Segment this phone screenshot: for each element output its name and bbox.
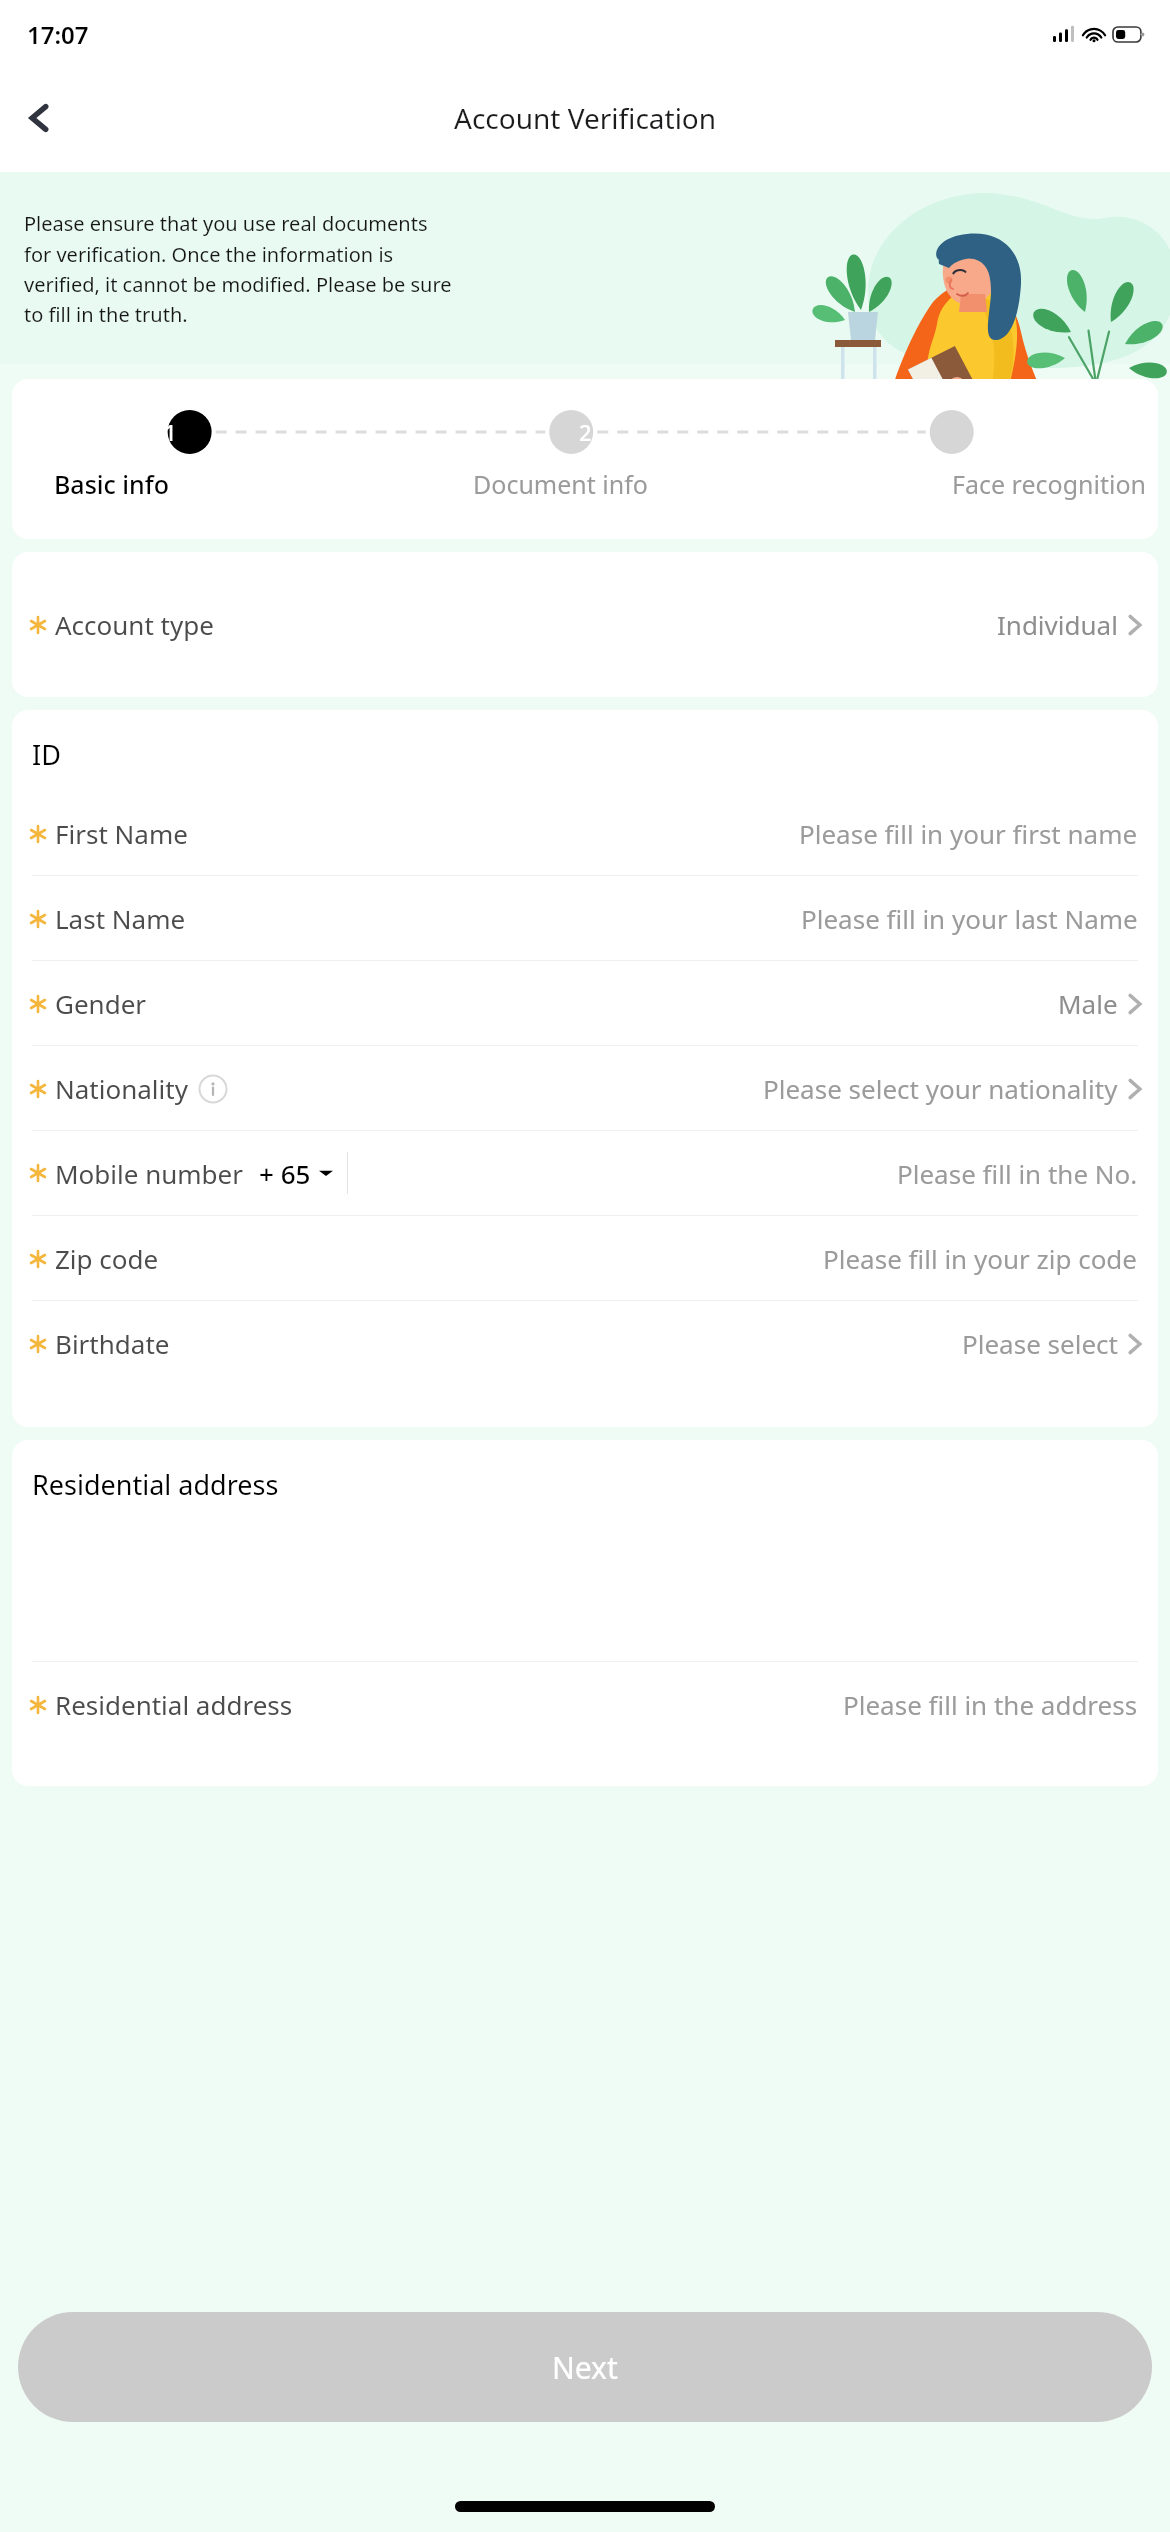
staticText: Next bbox=[552, 2347, 618, 2388]
staticText: Please fill in your first name bbox=[799, 816, 1138, 851]
staticText: Please fill in the No. bbox=[897, 1156, 1138, 1191]
button[interactable]: Basic info bbox=[54, 467, 169, 501]
staticText: Please select your nationality bbox=[763, 1071, 1118, 1106]
staticText: Please select bbox=[962, 1326, 1118, 1361]
staticText: First Name bbox=[55, 816, 188, 851]
staticText: Last Name bbox=[55, 901, 186, 936]
staticText: Document info bbox=[473, 467, 648, 501]
staticText: Residential address bbox=[55, 1687, 293, 1722]
button[interactable]: Birthdate bbox=[12, 1301, 1158, 1385]
staticText: Please fill in your last Name bbox=[801, 901, 1138, 936]
staticText: Basic info bbox=[54, 467, 169, 501]
button[interactable]: Document info bbox=[473, 467, 648, 501]
staticText: 17:07 bbox=[27, 18, 89, 51]
button[interactable]: Next bbox=[18, 2312, 1152, 2422]
staticText: Please fill in the address bbox=[843, 1687, 1138, 1722]
button[interactable]: Residential address bbox=[12, 1662, 1158, 1746]
button[interactable]: First Name bbox=[12, 791, 1158, 875]
staticText: Please fill in your zip code bbox=[823, 1241, 1138, 1276]
staticText: Face recognition bbox=[952, 467, 1146, 501]
staticText: Male bbox=[1058, 986, 1118, 1021]
staticText: Gender bbox=[55, 986, 147, 1021]
button[interactable]: Mobile number bbox=[12, 1131, 1158, 1215]
staticText: Zip code bbox=[55, 1241, 159, 1276]
staticText: Account Verification bbox=[454, 99, 717, 137]
staticText: Please ensure that you use real document… bbox=[24, 210, 454, 327]
staticText: Nationality bbox=[55, 1071, 188, 1106]
button[interactable]: Nationality information bbox=[198, 1074, 228, 1104]
button[interactable]: Last Name bbox=[12, 876, 1158, 960]
staticText: Mobile number bbox=[55, 1156, 243, 1191]
staticText: Birthdate bbox=[55, 1326, 170, 1361]
button[interactable]: Back bbox=[12, 90, 68, 146]
button[interactable]: Zip code bbox=[12, 1216, 1158, 1300]
staticText: Account type bbox=[55, 607, 214, 642]
staticText: Individual bbox=[997, 607, 1118, 642]
button[interactable]: Nationality bbox=[12, 1046, 1158, 1130]
button[interactable]: Gender bbox=[12, 961, 1158, 1045]
staticText: 2 bbox=[579, 417, 592, 447]
staticText: 1 bbox=[164, 417, 177, 447]
staticText: Residential address bbox=[32, 1466, 279, 1503]
button[interactable]: Face recognition bbox=[952, 467, 1146, 501]
button[interactable]: Account type bbox=[12, 552, 1158, 697]
staticText: ID bbox=[32, 736, 61, 773]
staticText: + 65 bbox=[259, 1156, 311, 1191]
